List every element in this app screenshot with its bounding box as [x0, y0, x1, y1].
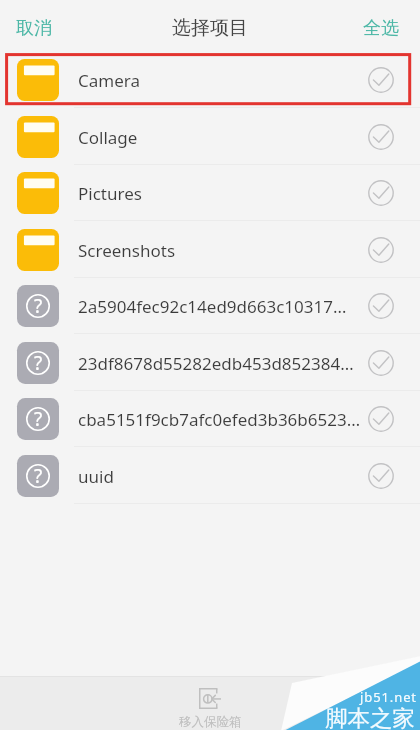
staticText: ? — [34, 350, 43, 376]
staticText: 脚本之家 — [325, 704, 415, 730]
other: Select — [368, 67, 394, 93]
staticText: cba5151f9cb7afc0efed3b36b6523… — [78, 408, 360, 431]
staticText: 移入保险箱 — [179, 714, 242, 730]
staticText: Pictures — [78, 182, 360, 205]
staticText: ? — [34, 463, 43, 489]
button[interactable]: ? — [0, 447, 420, 504]
button[interactable]: 取消 — [0, 5, 70, 52]
staticText: 2a5904fec92c14ed9d663c10317… — [78, 295, 360, 318]
other: Select — [368, 406, 394, 432]
button[interactable]: ? — [0, 277, 420, 334]
staticText: 选择项目 — [172, 16, 248, 40]
button[interactable]: 全选 — [345, 5, 420, 52]
staticText: ? — [34, 406, 43, 432]
button[interactable]: ? — [0, 334, 420, 391]
other: Select — [368, 350, 394, 376]
staticText: 取消 — [16, 17, 52, 40]
staticText: Screenshots — [78, 239, 360, 262]
staticText: Camera — [78, 69, 360, 92]
staticText: ? — [34, 293, 43, 319]
other: Select — [368, 293, 394, 319]
other: Select — [368, 124, 394, 150]
staticText: uuid — [78, 465, 360, 488]
staticText: Collage — [78, 126, 360, 149]
button[interactable]: Move to safe box — [155, 678, 265, 729]
button[interactable]: Pictures — [0, 164, 420, 221]
button[interactable]: ? — [0, 390, 420, 447]
staticText: jb51.net — [360, 688, 417, 706]
other: Select — [368, 237, 394, 263]
other: Select — [368, 463, 394, 489]
button[interactable]: Screenshots — [0, 221, 420, 278]
other: Move to safe box — [199, 688, 221, 709]
staticText: 23df8678d55282edb453d852384… — [78, 352, 360, 375]
other: Select — [368, 180, 394, 206]
staticText: 全选 — [363, 17, 399, 40]
button[interactable]: Collage — [0, 108, 420, 165]
button[interactable]: Camera — [0, 51, 420, 108]
